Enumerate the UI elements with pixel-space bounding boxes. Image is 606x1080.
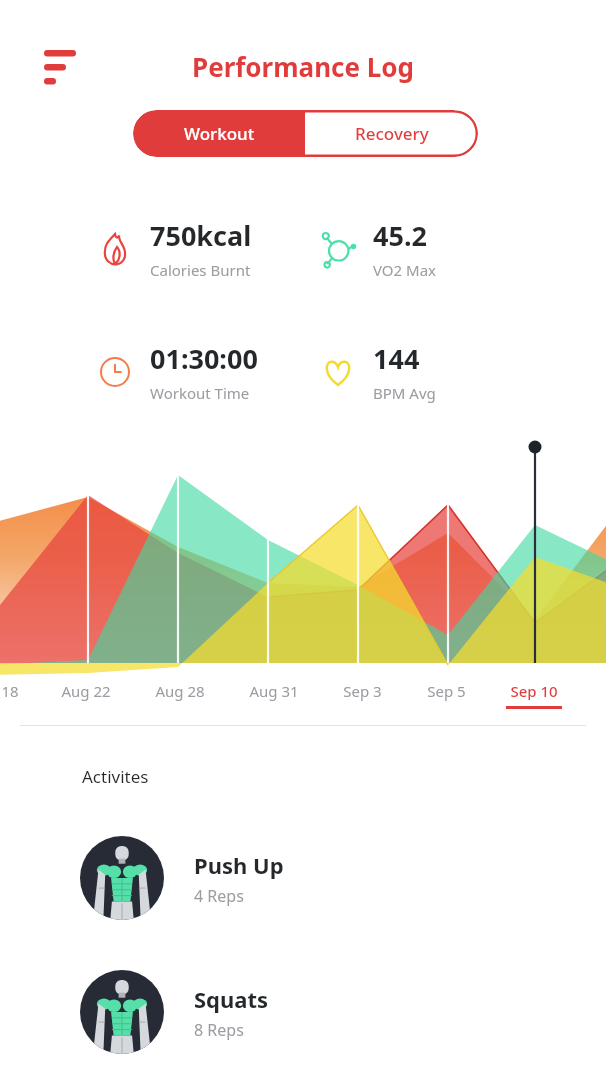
staticText: Squats [194,984,269,1014]
button[interactable]: Sep 10 [494,681,574,709]
staticText: Recovery [355,122,429,145]
staticText: 750kcal [150,217,252,254]
button[interactable]: Menu [34,38,80,78]
staticText: VO2 Max [373,260,437,280]
staticText: 18 [1,681,19,701]
button[interactable]: Aug 28 [140,681,220,701]
staticText: Calories Burnt [150,260,251,280]
staticText: 8 Reps [194,1019,244,1041]
staticText: 01:30:00 [150,340,258,377]
staticText: Performance Log [192,49,414,84]
staticText: Sep 3 [343,681,382,701]
staticText: Sep 5 [427,681,466,701]
staticText: Activites [82,765,149,788]
button[interactable]: Aug 31 [234,681,314,701]
staticText: Workout [184,122,255,145]
button[interactable]: Recovery [305,110,478,157]
button[interactable]: Push Up [0,836,606,920]
button[interactable]: 144 [319,340,436,403]
staticText: Sep 10 [510,681,558,701]
staticText: BPM Avg [373,383,436,403]
button[interactable]: 18 [0,681,50,701]
staticText: 45.2 [373,217,427,254]
staticText: Aug 22 [61,681,111,701]
button[interactable]: Squats [0,970,606,1054]
staticText: Aug 28 [155,681,205,701]
button[interactable]: Aug 22 [46,681,126,701]
staticText: Push Up [194,850,284,880]
staticText: Aug 31 [249,681,299,701]
button[interactable]: Workout [133,110,305,157]
button[interactable]: 750kcal [96,217,252,280]
staticText: Workout Time [150,383,250,403]
staticText: 4 Reps [194,885,244,907]
staticText: 144 [373,340,420,377]
button[interactable]: 01:30:00 [96,340,258,403]
button[interactable]: 45.2 [319,217,437,280]
button[interactable]: Sep 5 [406,681,486,701]
button[interactable]: Sep 3 [322,681,402,701]
